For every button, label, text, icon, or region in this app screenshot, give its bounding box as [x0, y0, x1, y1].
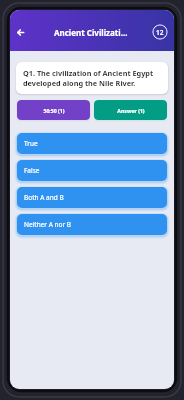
button[interactable]: False — [17, 160, 167, 181]
staticText: Answer (1) — [117, 107, 145, 114]
button[interactable]: Questions remaining — [152, 24, 168, 40]
staticText: True — [24, 139, 38, 148]
staticText: 50:50 (1) — [43, 107, 65, 114]
button[interactable]: Both A and B — [17, 187, 167, 208]
staticText: Ancient Civilizati... — [54, 27, 128, 38]
button[interactable]: Back — [11, 23, 29, 41]
staticText: False — [24, 166, 40, 175]
staticText: Both A and B — [24, 193, 64, 202]
button[interactable]: True — [17, 133, 167, 154]
staticText: Neither A nor B — [24, 220, 72, 229]
button[interactable]: Neither A nor B — [17, 214, 167, 235]
button[interactable]: 50:50 (1) — [17, 100, 90, 120]
staticText: 12 — [156, 28, 164, 37]
button[interactable]: Answer (1) — [94, 100, 167, 120]
staticText: Q1. The civilization of Ancient Egypt de… — [23, 68, 161, 88]
